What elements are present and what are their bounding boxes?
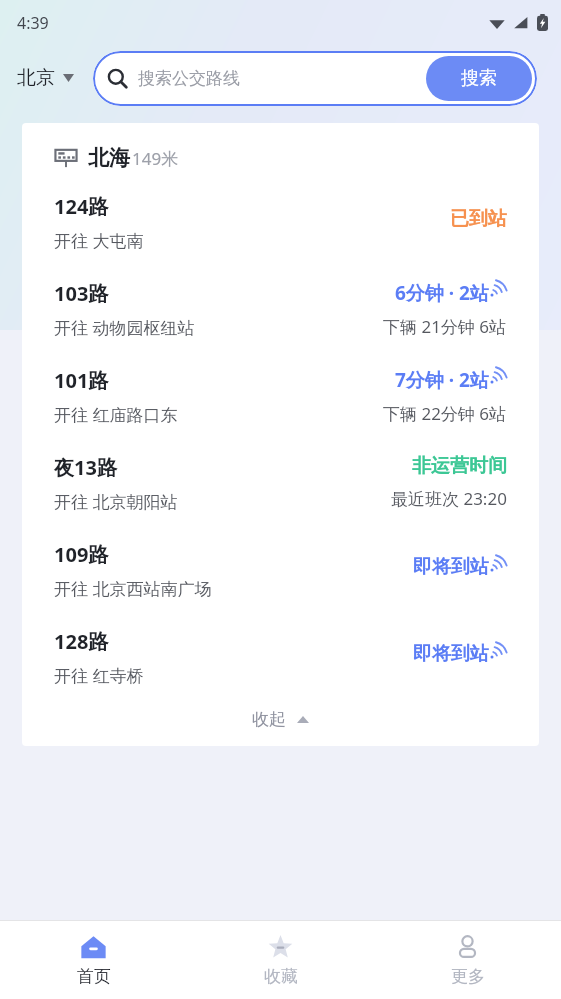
staticText: 开往 红庙路口东 [54,403,178,426]
button[interactable]: 首页 [0,921,187,999]
staticText: 即将到站 [413,555,489,579]
button[interactable]: 更多 [374,921,561,999]
staticText: 7分钟 · 2站 [395,367,489,393]
button[interactable]: 收藏 [187,921,374,999]
button[interactable]: 搜索 [426,56,532,101]
button[interactable]: 夜13路 [22,432,539,519]
staticText: 开往 大屯南 [54,229,144,252]
button[interactable]: 搜索公交路线 [93,51,537,106]
staticText: 夜13路 [54,454,117,481]
staticText: 收起 [252,709,286,730]
staticText: 已到站 [450,207,507,231]
staticText: 149米 [132,147,179,170]
staticText: 103路 [54,280,109,307]
staticText: 开往 北京西站南广场 [54,577,212,600]
staticText: 128路 [54,628,109,655]
staticText: 下辆 22分钟 6站 [383,402,507,425]
button[interactable]: 收起 [22,693,539,746]
button[interactable]: 北京 [17,58,74,98]
staticText: 即将到站 [413,642,489,666]
staticText: 非运营时间 [412,454,507,478]
button[interactable]: 103路 [22,258,539,345]
button[interactable]: 北海 [22,123,539,179]
button[interactable]: 109路 [22,519,539,606]
staticText: 109路 [54,541,109,568]
staticText: 4:39 [17,12,49,34]
staticText: 搜索 [461,67,497,90]
staticText: 下辆 21分钟 6站 [383,315,507,338]
staticText: 搜索公交路线 [138,68,240,89]
staticText: 6分钟 · 2站 [395,280,489,306]
staticText: 124路 [54,193,109,220]
staticText: 101路 [54,367,109,394]
staticText: 开往 动物园枢纽站 [54,316,195,339]
staticText: 开往 北京朝阳站 [54,490,178,513]
button[interactable]: 101路 [22,345,539,432]
staticText: 北海 [88,145,130,171]
button[interactable]: 128路 [22,606,539,693]
staticText: 更多 [451,966,485,987]
staticText: 北京 [17,66,55,90]
staticText: 首页 [77,966,111,987]
staticText: 最近班次 23:20 [391,487,507,510]
staticText: 收藏 [264,966,298,987]
button[interactable]: 124路 [22,179,539,258]
staticText: 开往 红寺桥 [54,664,144,687]
